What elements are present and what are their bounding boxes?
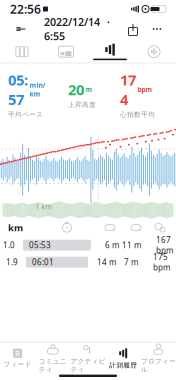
staticText: 1.9 — [6, 257, 18, 267]
staticText: km — [8, 221, 23, 234]
staticText: 167 bpm — [156, 234, 173, 256]
staticText: 計測履歴 — [109, 361, 137, 369]
staticText: 22:56 — [10, 1, 41, 17]
button[interactable]: Map — [0, 42, 44, 62]
button[interactable]: アクティビティ — [70, 346, 106, 372]
staticText: 6 m — [105, 240, 119, 250]
staticText: 2022/12/14 ・ 6:55 — [44, 15, 114, 43]
button[interactable]: Share — [122, 18, 144, 40]
button[interactable]: Charts — [88, 41, 132, 63]
button[interactable]: 1.0 — [0, 237, 176, 254]
staticText: コミュニティ — [39, 357, 67, 374]
button[interactable]: フィード — [0, 346, 35, 372]
staticText: 175 bpm — [153, 251, 170, 273]
staticText: m — [85, 85, 92, 94]
button[interactable]: Photos — [44, 42, 88, 62]
staticText: 平均ペース — [8, 110, 43, 119]
staticText: 1 km — [35, 202, 51, 211]
staticText: min/km — [29, 81, 45, 98]
button[interactable]: Back — [6, 18, 36, 40]
staticText: bpm — [137, 85, 152, 94]
staticText: 7 m — [124, 257, 138, 267]
staticText: 上昇高度 — [68, 101, 96, 109]
button[interactable]: 1.9 — [0, 254, 176, 271]
staticText: 174 — [120, 70, 136, 109]
staticText: 05:57 — [8, 70, 28, 109]
button[interactable]: More options — [144, 18, 170, 40]
staticText: 06:01 — [32, 257, 54, 267]
button[interactable]: 計測履歴 — [106, 346, 141, 372]
staticText: 11 m — [122, 240, 141, 250]
button[interactable]: Heart rate — [132, 42, 176, 62]
button[interactable]: コミュニティ — [35, 346, 70, 372]
staticText: 1.0 — [3, 240, 15, 250]
staticText: 14 m — [97, 257, 116, 267]
staticText: 05:53 — [29, 240, 51, 250]
button[interactable]: プロフィール — [141, 346, 176, 372]
staticText: 心拍数平均 — [120, 110, 155, 119]
staticText: プロフィール — [141, 357, 176, 374]
staticText: フィード — [4, 360, 32, 368]
staticText: 20 — [68, 80, 84, 99]
staticText: アクティビティ — [70, 357, 105, 374]
